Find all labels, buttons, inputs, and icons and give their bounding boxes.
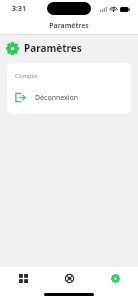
staticText: Déconnexion xyxy=(35,93,79,103)
button[interactable]: Dashboard xyxy=(0,267,46,289)
button[interactable]: Activity xyxy=(46,267,92,289)
staticText: 3:31 xyxy=(12,4,26,14)
staticText: Paramètres xyxy=(49,21,89,31)
button[interactable]: Settings xyxy=(92,267,138,289)
button[interactable]: Déconnexion xyxy=(7,88,131,114)
staticText: Compte xyxy=(15,72,38,80)
staticText: Paramètres xyxy=(24,41,82,55)
